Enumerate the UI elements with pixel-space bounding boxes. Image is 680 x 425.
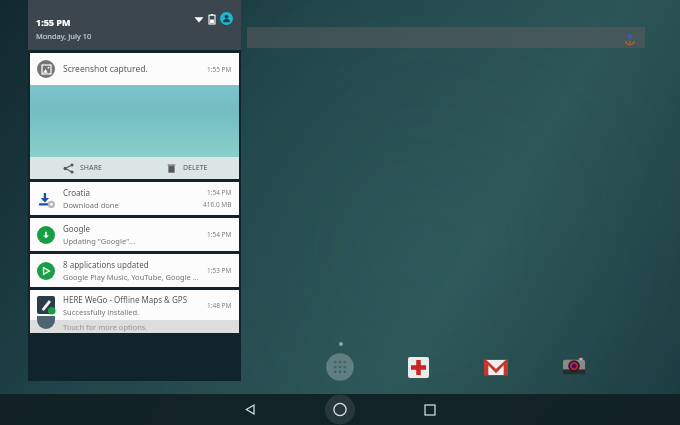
button[interactable]: Recent apps bbox=[413, 394, 447, 425]
staticText: Successfully installed. bbox=[63, 307, 140, 317]
staticText: 8 applications updated bbox=[63, 259, 149, 270]
staticText: Google Play Music, YouTube, Google Play … bbox=[63, 272, 203, 282]
button[interactable]: Back bbox=[233, 394, 267, 425]
button[interactable]: Home bbox=[323, 394, 357, 425]
staticText: Google bbox=[63, 223, 90, 234]
staticText: Screenshot captured. bbox=[63, 63, 148, 75]
staticText: SHARE bbox=[80, 163, 102, 173]
staticText: Monday, July 10 bbox=[36, 31, 92, 41]
button[interactable]: HERE WeGo - Offline Maps & GPS bbox=[30, 290, 239, 333]
button[interactable]: Medical app bbox=[403, 352, 433, 382]
button[interactable]: 8 applications updated bbox=[30, 254, 239, 287]
button[interactable]: DELETE bbox=[134, 157, 239, 179]
staticText: Updating "Google"... bbox=[63, 236, 136, 246]
staticText: 1:54 PM bbox=[207, 188, 232, 197]
staticText: 416.0 MB bbox=[203, 200, 232, 209]
button[interactable]: Voice search bbox=[247, 27, 645, 48]
staticText: 1:48 PM bbox=[207, 301, 232, 310]
button[interactable]: Voice search bbox=[623, 31, 637, 45]
staticText: HERE WeGo - Offline Maps & GPS bbox=[63, 294, 188, 305]
button[interactable]: SHARE bbox=[30, 157, 134, 179]
staticText: 1:55 PM bbox=[207, 65, 232, 74]
button[interactable]: Google bbox=[30, 218, 239, 251]
staticText: DELETE bbox=[183, 163, 208, 173]
button[interactable]: Camera bbox=[559, 352, 589, 382]
staticText: 1:54 PM bbox=[207, 230, 232, 239]
button[interactable]: Croatia bbox=[30, 182, 239, 215]
button[interactable]: Screenshot captured. bbox=[30, 53, 239, 179]
staticText: Touch for more options. bbox=[63, 322, 148, 332]
staticText: 1:53 PM bbox=[207, 266, 232, 275]
staticText: Croatia bbox=[63, 187, 90, 198]
staticText: Download done bbox=[63, 200, 119, 210]
button[interactable]: User profile bbox=[220, 12, 233, 25]
button[interactable]: Gmail bbox=[481, 352, 511, 382]
staticText: 1:55 PM bbox=[36, 16, 71, 28]
button[interactable]: Apps bbox=[325, 352, 355, 382]
